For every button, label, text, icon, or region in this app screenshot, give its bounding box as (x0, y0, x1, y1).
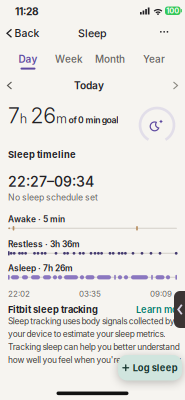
staticText: No sleep schedule set (8, 192, 98, 202)
staticText: Learn more (136, 304, 185, 315)
button[interactable]: Learn more (136, 304, 185, 315)
button[interactable]: Log sleep (118, 355, 182, 380)
staticText: 03:35 (79, 289, 101, 299)
button[interactable]: Week (51, 53, 87, 65)
button[interactable]: Open panel (174, 291, 185, 328)
staticText: 7h 26m of 0 min goal (8, 103, 118, 128)
staticText: Day (18, 53, 37, 65)
staticText: Sleep timeline (8, 149, 76, 160)
staticText: Sleep tracking uses body signals collect… (8, 316, 181, 365)
staticText: Today (74, 79, 104, 92)
button[interactable]: More options (154, 25, 174, 39)
button[interactable]: Year (136, 53, 172, 65)
staticText: Back (14, 27, 39, 40)
button[interactable]: Today (66, 77, 112, 94)
button[interactable]: Previous day (3, 78, 15, 93)
staticText: Awake · 5 min (8, 214, 65, 224)
staticText: 11:28 (15, 5, 39, 18)
staticText: Sleep (78, 27, 107, 40)
staticText: Restless · 3h 36m (8, 239, 80, 249)
button[interactable]: Next day (169, 78, 181, 93)
button[interactable]: Day (10, 53, 46, 70)
staticText: 22:27–09:34 (8, 173, 94, 190)
staticText: 09:09 (150, 289, 172, 299)
staticText: Log sleep (133, 362, 178, 373)
button[interactable]: Month (92, 53, 128, 65)
staticText: Year (143, 53, 165, 65)
staticText: Asleep · 7h 26m (8, 263, 73, 273)
staticText: Fitbit sleep tracking (8, 304, 98, 315)
staticText: 100 (166, 6, 179, 15)
staticText: Week (55, 53, 83, 65)
button[interactable]: Back (0, 24, 43, 43)
staticText: 22:02 (8, 289, 30, 299)
staticText: Month (95, 53, 125, 65)
